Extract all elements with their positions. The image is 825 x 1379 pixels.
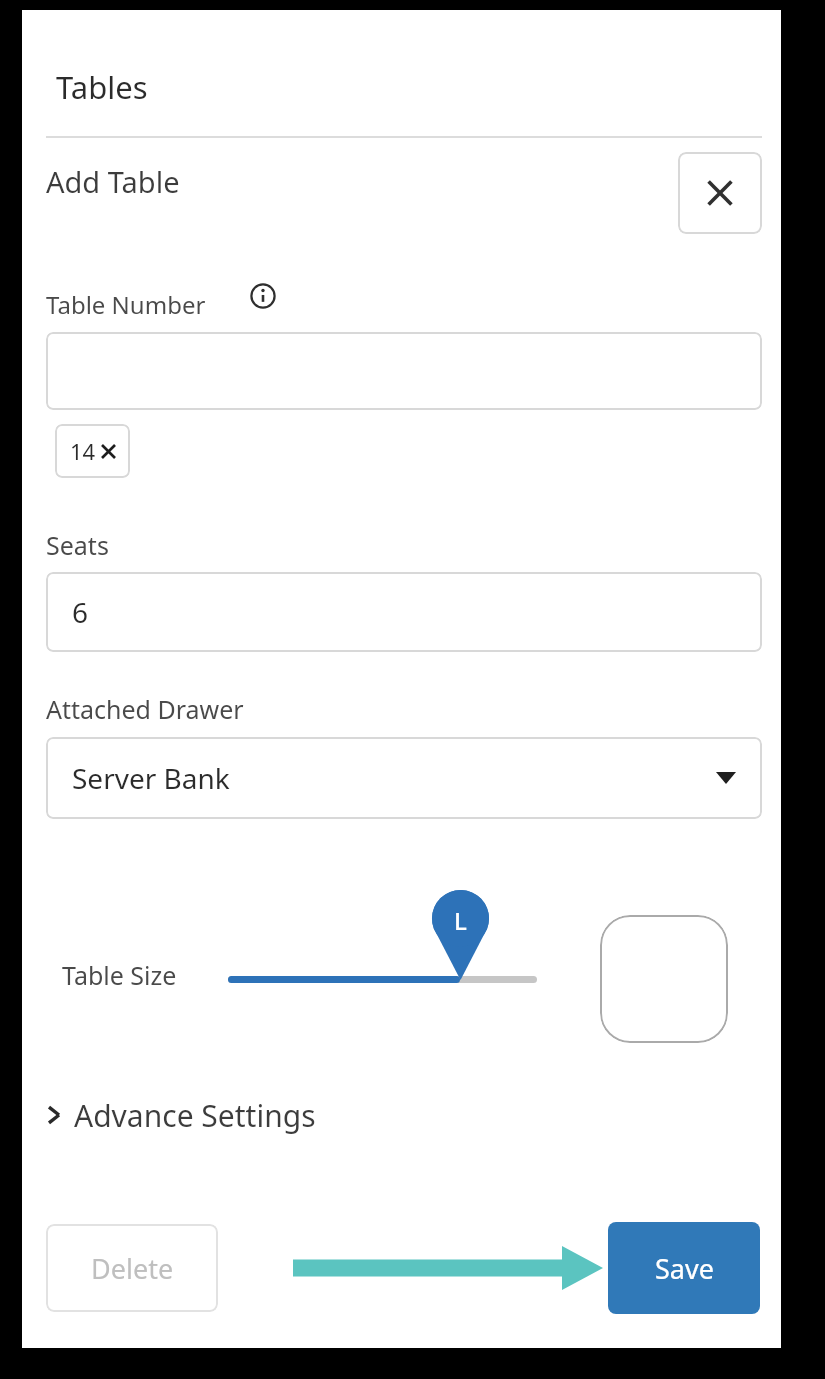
staticText: Tables bbox=[56, 66, 148, 108]
staticText: Table Size bbox=[62, 958, 177, 992]
staticText: Server Bank bbox=[72, 759, 230, 797]
button[interactable]: Table shape preview bbox=[600, 915, 728, 1043]
button[interactable]: Table size large bbox=[432, 890, 489, 980]
button[interactable]: Delete bbox=[46, 1224, 218, 1312]
button[interactable]: Table number info bbox=[249, 282, 277, 310]
staticText: Attached Drawer bbox=[46, 692, 244, 726]
staticText: L bbox=[454, 904, 467, 937]
button[interactable]: Save bbox=[608, 1222, 760, 1314]
staticText: Seats bbox=[46, 528, 109, 562]
staticText: Advance Settings bbox=[74, 1095, 316, 1136]
button[interactable]: Advance Settings bbox=[44, 1088, 316, 1142]
staticText: Table Number bbox=[46, 288, 206, 321]
staticText: Delete bbox=[91, 1250, 174, 1287]
button[interactable] bbox=[46, 332, 762, 410]
button[interactable]: Attached Drawer dropdown bbox=[46, 737, 762, 819]
staticText: 14 bbox=[70, 436, 96, 466]
button[interactable]: Close bbox=[678, 152, 762, 234]
staticText: Save bbox=[655, 1250, 714, 1287]
button[interactable] bbox=[228, 976, 537, 983]
staticText: Add Table bbox=[46, 162, 180, 201]
staticText: 6 bbox=[72, 593, 89, 631]
button[interactable]: 6 bbox=[46, 572, 762, 652]
button[interactable]: 14 bbox=[55, 424, 130, 478]
